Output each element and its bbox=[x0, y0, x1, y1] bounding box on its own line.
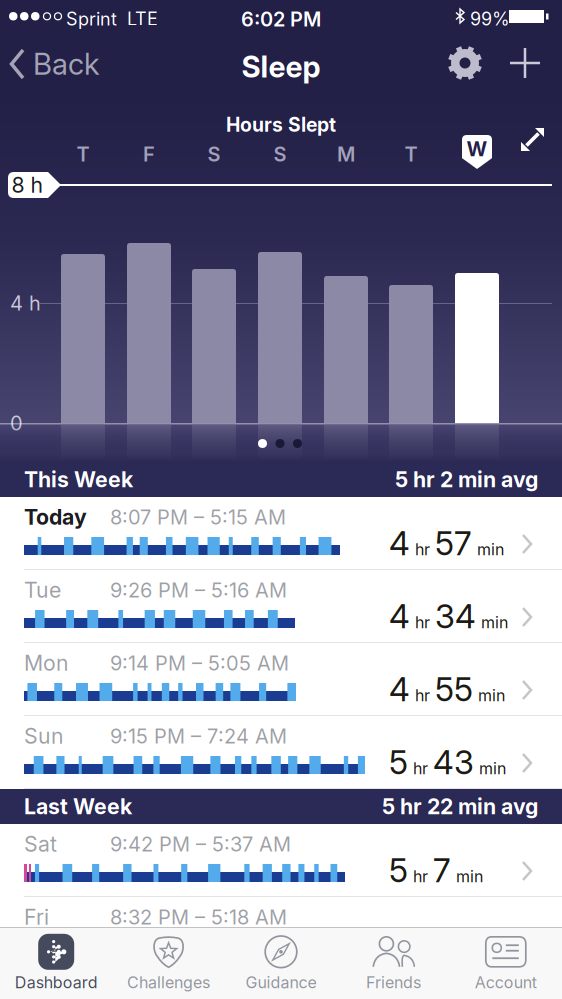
staticText: Last Week bbox=[24, 794, 132, 819]
button[interactable]: Friends bbox=[337, 927, 450, 999]
button[interactable] bbox=[518, 125, 548, 155]
staticText: Tue bbox=[24, 577, 61, 603]
staticText: 5 hr 7 min bbox=[389, 851, 483, 889]
staticText: Mon bbox=[24, 650, 69, 676]
staticText: Fri bbox=[24, 904, 49, 930]
staticText: 8 h bbox=[11, 172, 43, 198]
button[interactable]: Sun bbox=[0, 716, 562, 789]
staticText: S bbox=[207, 142, 220, 166]
staticText: Challenges bbox=[127, 973, 210, 992]
staticText: Friends bbox=[366, 973, 421, 992]
button[interactable]: Challenges bbox=[112, 927, 225, 999]
staticText: S bbox=[273, 142, 286, 166]
button[interactable]: Guidance bbox=[225, 927, 337, 999]
staticText: 5 hr 43 min bbox=[389, 743, 506, 781]
staticText: LTE bbox=[127, 8, 158, 30]
staticText: W bbox=[466, 137, 487, 161]
staticText: Sat bbox=[24, 831, 57, 857]
staticText: T bbox=[404, 142, 417, 166]
button[interactable]: Account bbox=[450, 927, 562, 999]
staticText: 4 hr 34 min bbox=[389, 597, 508, 635]
button[interactable]: W bbox=[462, 135, 492, 169]
staticText: Sleep bbox=[241, 49, 320, 84]
staticText: Guidance bbox=[245, 973, 316, 992]
staticText: Sun bbox=[24, 723, 64, 749]
staticText: Back bbox=[33, 46, 100, 82]
staticText: Sprint bbox=[66, 8, 117, 30]
staticText: 5 hr 22 min avg bbox=[382, 794, 538, 819]
staticText: F bbox=[143, 142, 155, 166]
staticText: Hours Slept bbox=[226, 113, 336, 136]
staticText: 4 h bbox=[10, 291, 41, 315]
staticText: T bbox=[76, 142, 89, 166]
button[interactable]: Tue bbox=[0, 570, 562, 643]
button[interactable]: Mon bbox=[0, 643, 562, 716]
button[interactable]: Today bbox=[0, 497, 562, 570]
staticText: This Week bbox=[24, 467, 133, 492]
button[interactable] bbox=[510, 48, 540, 78]
staticText: Today bbox=[24, 504, 87, 530]
button[interactable]: Sat bbox=[0, 824, 562, 897]
staticText: 4 hr 57 min bbox=[389, 524, 504, 562]
staticText: 0 bbox=[10, 411, 23, 435]
staticText: M bbox=[337, 142, 355, 166]
staticText: Account bbox=[475, 973, 537, 992]
staticText: 99% bbox=[470, 8, 510, 30]
staticText: 9:15 PM – 7:24 AM bbox=[110, 724, 287, 748]
staticText: 5 hr 2 min avg bbox=[395, 467, 538, 492]
staticText: 8:07 PM – 5:15 AM bbox=[110, 505, 286, 529]
staticText: 6:02 PM bbox=[241, 7, 321, 31]
staticText: 9:14 PM – 5:05 AM bbox=[110, 651, 289, 675]
button[interactable]: Dashboard bbox=[0, 927, 112, 999]
staticText: Dashboard bbox=[15, 973, 98, 992]
staticText: 9:42 PM – 5:37 AM bbox=[110, 832, 291, 856]
button[interactable]: Back bbox=[0, 33, 100, 95]
staticText: 8:32 PM – 5:18 AM bbox=[110, 905, 287, 929]
staticText: 9:26 PM – 5:16 AM bbox=[110, 578, 287, 602]
button[interactable] bbox=[448, 46, 482, 80]
staticText: 4 hr 55 min bbox=[389, 670, 505, 708]
